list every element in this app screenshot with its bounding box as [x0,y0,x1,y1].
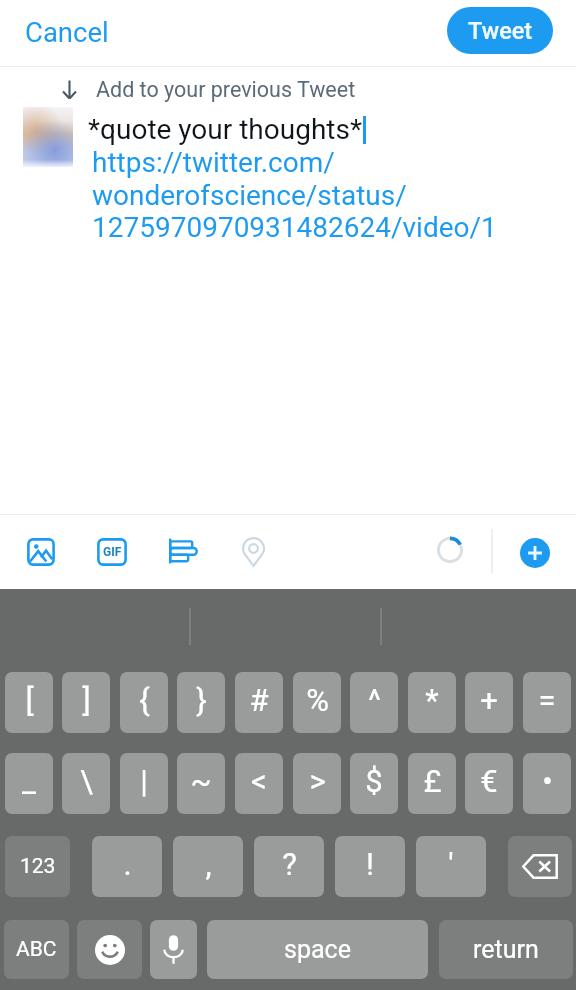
staticText: ' [448,846,454,882]
staticText: } [196,682,207,718]
button[interactable]: . [92,836,162,897]
staticText: ! [366,846,374,882]
button[interactable]: $ [350,753,398,814]
staticText: space [284,935,351,964]
staticText: ^ [368,682,381,718]
button[interactable]: Add a GIF [92,532,132,572]
staticText: Cancel [25,16,109,48]
staticText: % [306,682,329,718]
staticText: ] [82,682,91,718]
staticText: ~ [190,763,212,799]
staticText: # [249,682,269,718]
staticText: . [123,846,132,882]
button[interactable]: [ [5,672,53,733]
button[interactable]: \ [62,753,110,814]
button[interactable]: ^ [350,672,398,733]
button[interactable]: # [235,672,283,733]
staticText: | [140,763,148,799]
staticText: GIF [103,545,122,559]
button[interactable]: £ [408,753,456,814]
button[interactable]: Tweet [447,7,553,54]
button[interactable]: { [120,672,168,733]
button[interactable]: > [293,753,341,814]
staticText: > [309,763,326,799]
button[interactable]: , [173,836,243,897]
button[interactable]: ! [335,836,405,897]
button[interactable]: Character count [425,525,475,575]
button[interactable]: Add poll [150,519,210,585]
staticText: *quote your thoughts* [88,113,363,146]
staticText: € [480,763,498,799]
button[interactable]: ' [416,836,486,897]
staticText: • [542,763,553,799]
button[interactable]: ] [62,672,110,733]
staticText: $ [365,763,383,799]
button[interactable]: | [120,753,168,814]
staticText: https://twitter.com/ wonderofscience/sta… [92,146,497,244]
staticText: Add to your previous Tweet [96,77,356,102]
button[interactable]: + [465,672,513,733]
button[interactable]: % [293,672,341,733]
button[interactable]: } [177,672,225,733]
button[interactable]: € [465,753,513,814]
button[interactable]: Add another Tweet [520,538,550,568]
staticText: < [251,763,267,799]
button[interactable]: ? [254,836,324,897]
button[interactable]: < [235,753,283,814]
staticText: , [205,846,212,882]
button[interactable]: Emoji keyboard [77,920,142,979]
button[interactable]: ABC [4,920,69,979]
staticText: [ [25,682,34,718]
button[interactable]: Tag location [223,518,283,586]
staticText: ABC [16,937,57,962]
button[interactable]: = [523,672,571,733]
button[interactable]: Cancel [8,7,126,57]
staticText: * [425,682,439,718]
staticText: _ [22,763,36,799]
staticText: { [139,682,150,718]
staticText: Tweet [468,17,533,45]
staticText: + [480,682,498,718]
button[interactable]: Voice input [150,920,197,979]
staticText: 123 [20,854,56,879]
staticText: return [473,935,539,964]
staticText: £ [423,763,442,799]
button[interactable]: 123 [5,836,70,897]
staticText: = [538,682,556,718]
button[interactable]: * [408,672,456,733]
staticText: \ [80,763,93,799]
staticText: ? [282,846,297,882]
button[interactable]: ~ [177,753,225,814]
button[interactable]: Backspace [508,836,572,897]
button[interactable]: Add photos or video [21,532,61,572]
button[interactable]: _ [5,753,53,814]
button[interactable]: return [439,920,573,979]
button[interactable]: space [207,920,428,979]
button[interactable]: • [523,753,571,814]
